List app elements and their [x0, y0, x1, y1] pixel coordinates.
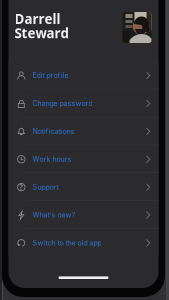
button[interactable]: Change password: [8, 89, 158, 117]
staticText: What's new?: [32, 211, 75, 219]
staticText: ?: [19, 182, 23, 192]
staticText: Edit profile: [32, 71, 68, 80]
staticText: Change password: [32, 99, 92, 108]
button[interactable]: Work hours: [8, 145, 158, 173]
button[interactable]: Notifications: [8, 117, 158, 145]
staticText: Switch to the old app: [32, 239, 101, 247]
button[interactable]: What's new?: [8, 201, 158, 229]
button[interactable]: ?: [8, 173, 158, 201]
button[interactable]: Switch to the old app: [8, 229, 158, 257]
staticText: Darrell Steward: [14, 10, 68, 42]
button[interactable]: Edit profile: [8, 62, 158, 89]
staticText: Work hours: [32, 155, 71, 163]
staticText: Support: [32, 183, 58, 191]
staticText: Notifications: [32, 127, 74, 136]
